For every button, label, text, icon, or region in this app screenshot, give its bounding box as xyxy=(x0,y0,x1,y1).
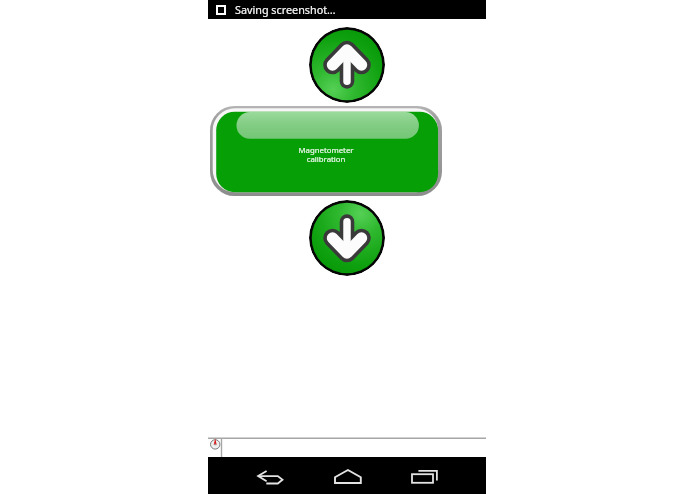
staticText: Saving screenshot… xyxy=(235,2,336,17)
button[interactable]: Move down xyxy=(309,200,385,276)
button[interactable]: Move up xyxy=(309,27,385,103)
button[interactable]: Recent apps xyxy=(406,457,446,494)
button[interactable]: Back xyxy=(252,457,292,494)
button[interactable]: Magnetometer calibration xyxy=(210,106,442,196)
staticText: Magnetometer calibration xyxy=(298,145,354,164)
button[interactable]: Home xyxy=(329,457,369,494)
